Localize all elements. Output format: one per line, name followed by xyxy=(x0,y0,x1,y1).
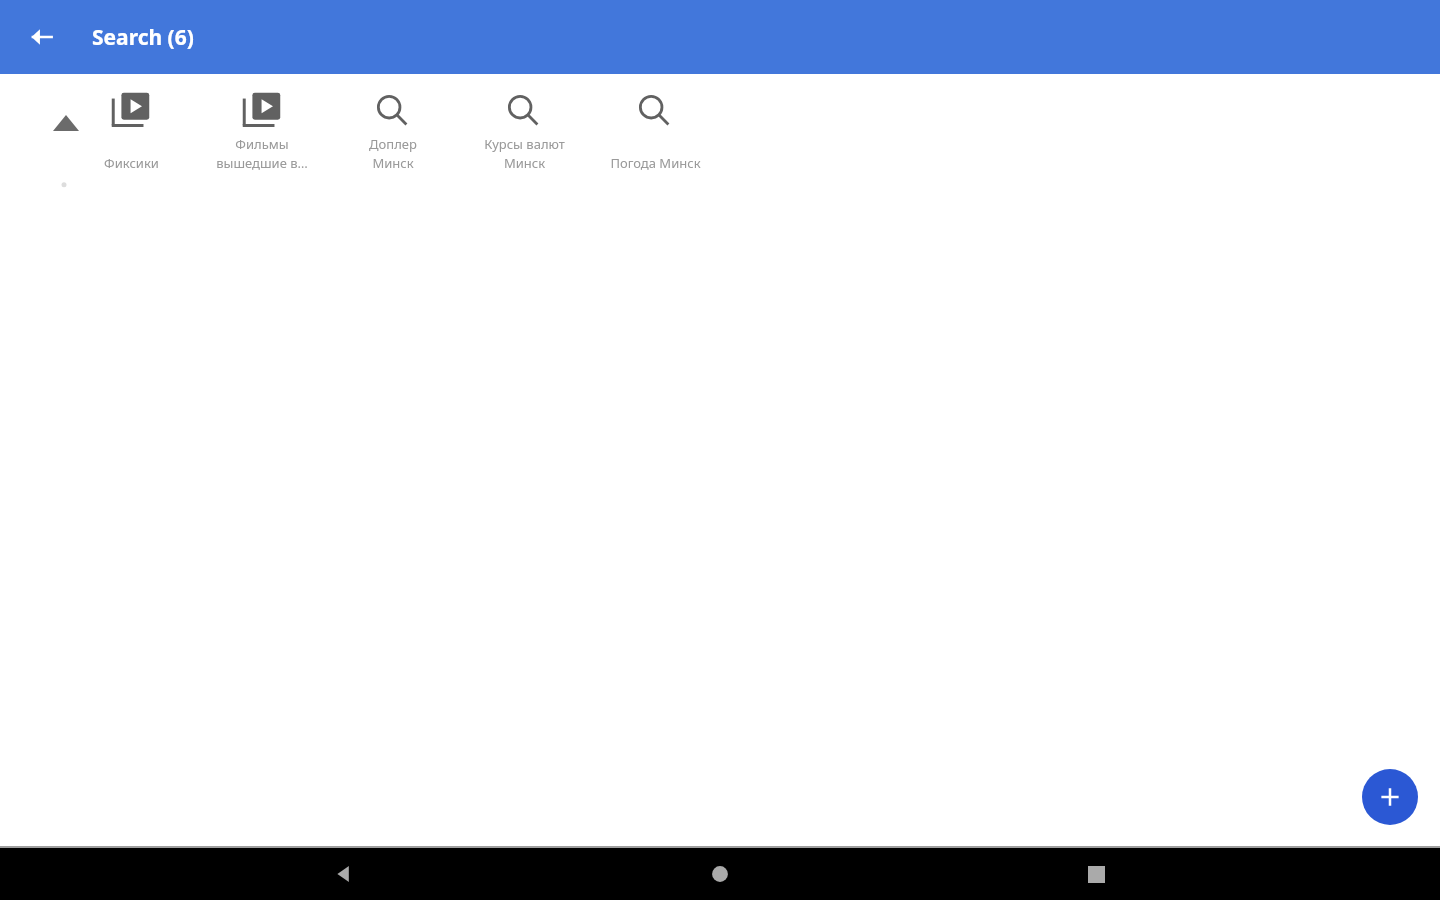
staticText: Фиксики xyxy=(104,154,159,172)
staticText: Доплер Минск xyxy=(369,135,417,172)
staticText: Погода Минск xyxy=(610,154,701,172)
button[interactable]: Back xyxy=(18,13,66,61)
button[interactable]: Collapse xyxy=(28,88,104,198)
button[interactable]: Фильмы вышедшие в… xyxy=(200,74,324,204)
button[interactable]: Фиксики xyxy=(69,74,193,204)
button[interactable]: Recents xyxy=(1064,848,1128,900)
button[interactable]: Add xyxy=(1362,769,1418,825)
staticText: Фильмы вышедшие в… xyxy=(216,135,308,172)
staticText: Курсы валют Минск xyxy=(484,135,565,172)
button[interactable]: Home xyxy=(688,848,752,900)
button[interactable]: Доплер Минск xyxy=(331,74,455,204)
button[interactable]: Погода Минск xyxy=(593,74,717,204)
button[interactable]: Курсы валют Минск xyxy=(462,74,586,204)
button[interactable]: Back xyxy=(312,848,376,900)
staticText: Search (6) xyxy=(92,23,194,52)
